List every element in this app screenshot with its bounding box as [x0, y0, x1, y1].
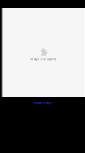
button[interactable]: Download the plug-in — [32, 97, 52, 105]
staticText: The plugin is not supported — [30, 57, 56, 61]
staticText: Download the plug-in — [32, 101, 52, 105]
